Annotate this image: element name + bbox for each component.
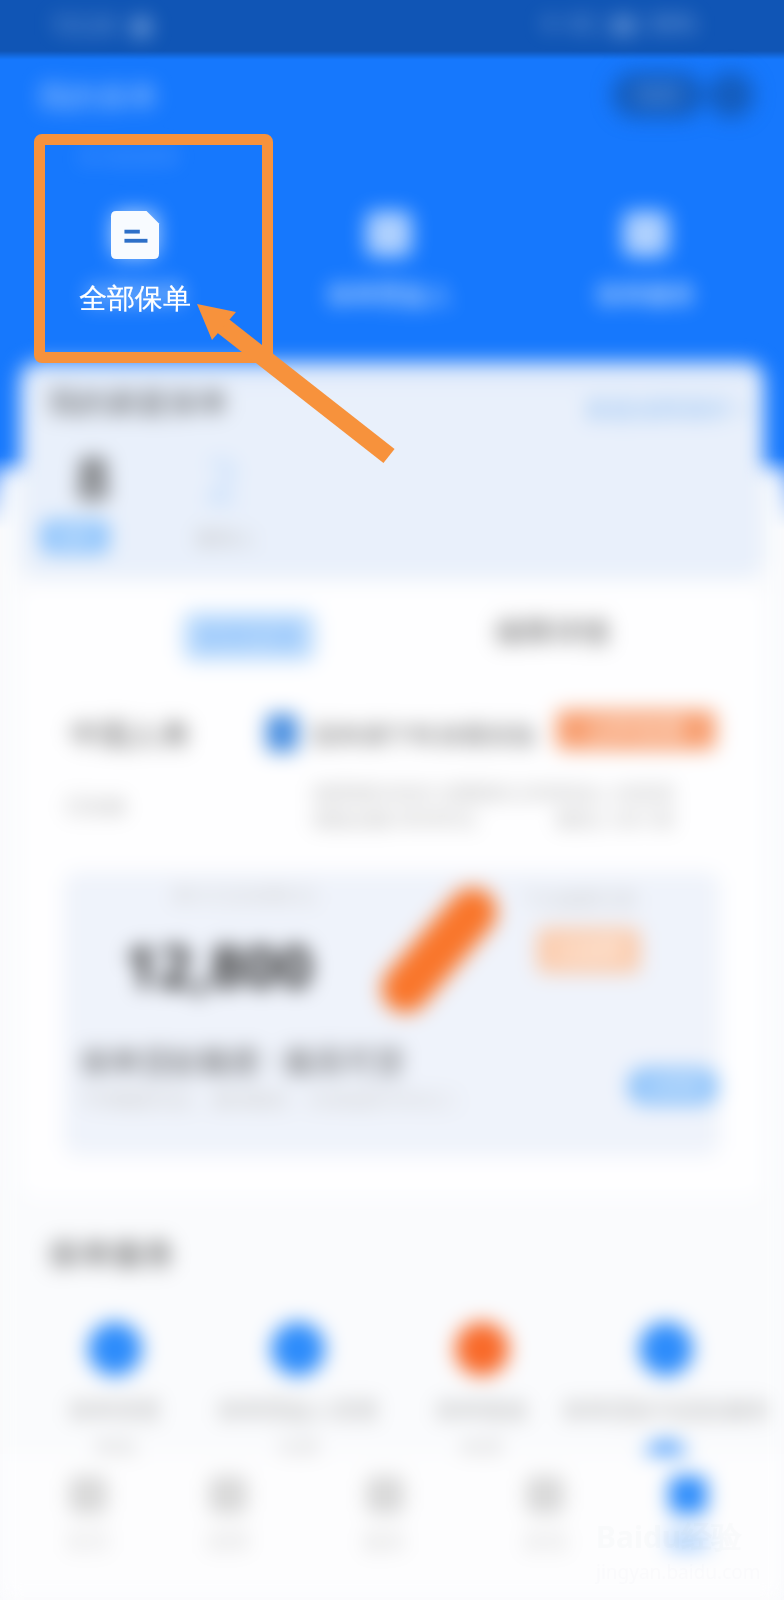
staticText: 10:24 ● <box>50 6 153 41</box>
staticText: 共3份保单 <box>78 140 179 170</box>
staticText: 保障详情 <box>494 614 610 651</box>
staticText: 投保人:张某某 <box>556 780 676 806</box>
staticText: 保单复效 <box>436 1396 528 1425</box>
staticText: 全部保单 <box>85 279 185 310</box>
button[interactable]: 我的保单 <box>38 78 158 116</box>
button[interactable]: 我的家庭保单 <box>20 362 764 578</box>
staticText: ✈ 4G ▮▮ 88% <box>540 6 697 39</box>
staticText: 去看看 <box>643 1074 703 1099</box>
button[interactable]: 保单受益人变更 <box>188 1322 408 1462</box>
staticText: Baidu经验 <box>596 1516 742 1557</box>
button[interactable]: 发现 <box>485 1476 605 1556</box>
button[interactable]: 保单贷款额度 · 最高可贷 <box>20 1040 764 1150</box>
staticText: 保单受益人变更 <box>218 1396 379 1425</box>
staticText: 保单列表 <box>197 620 301 653</box>
staticText: 找回 <box>636 81 680 109</box>
staticText: 12,800 <box>124 924 313 1006</box>
button[interactable]: 去看看 <box>628 1068 718 1105</box>
button[interactable]: 我的 <box>628 1476 748 1556</box>
button[interactable]: 首页 <box>28 1476 148 1556</box>
button[interactable]: 保单服务 <box>581 211 711 310</box>
button[interactable]: More options <box>708 72 754 118</box>
staticText: 保单贷款额度 · 最高可贷 <box>80 1040 404 1081</box>
staticText: 立即查看 <box>588 715 684 745</box>
staticText: 我的家庭保单 <box>48 384 228 422</box>
button[interactable]: 保单列表 <box>183 612 315 661</box>
staticText: 国寿康宁终身重疾险 <box>312 720 537 751</box>
button[interactable]: 全部保单 <box>70 211 200 316</box>
staticText: 2 <box>206 442 239 518</box>
staticText: 中国人寿 <box>70 716 190 754</box>
button[interactable]: 找回 <box>612 72 704 118</box>
staticText: 8 <box>76 436 111 518</box>
staticText: 保单服务 <box>596 279 696 310</box>
staticText: 全部保单 <box>79 281 191 316</box>
button[interactable]: 保障 <box>168 1476 288 1556</box>
button[interactable]: 中国人寿 <box>20 702 764 838</box>
staticText: 保单服务 <box>48 1234 176 1274</box>
staticText: 我的 <box>666 1528 710 1556</box>
button[interactable]: 保单复效 <box>372 1322 592 1462</box>
button[interactable]: 保单贷款与还款服务 <box>556 1322 776 1493</box>
staticText: 保单变更 <box>69 1396 161 1425</box>
button[interactable]: 保单变更 <box>5 1322 225 1462</box>
staticText: 家庭保障测评 > <box>586 392 750 425</box>
staticText: 保单受益人 <box>327 279 452 310</box>
button[interactable]: 立即查看 <box>556 710 716 750</box>
button[interactable]: 全部保单 <box>70 211 200 310</box>
button[interactable]: 去缴费 <box>537 928 640 973</box>
button[interactable]: 保障详情 <box>494 614 610 651</box>
button[interactable]: 服务 <box>325 1476 445 1556</box>
staticText: 保障期间:终身 交费期间:20年 <box>312 780 558 806</box>
staticText: 我的保单 <box>38 78 158 116</box>
button[interactable]: 保单受益人 <box>324 211 454 310</box>
staticText: 去缴费 <box>554 936 623 965</box>
staticText: 被保人 <box>196 526 256 551</box>
staticText: 保单贷款与还款服务 <box>563 1396 770 1425</box>
button[interactable]: 累计已交保费(元) <box>64 872 720 1156</box>
staticText: 保单 <box>56 525 94 549</box>
